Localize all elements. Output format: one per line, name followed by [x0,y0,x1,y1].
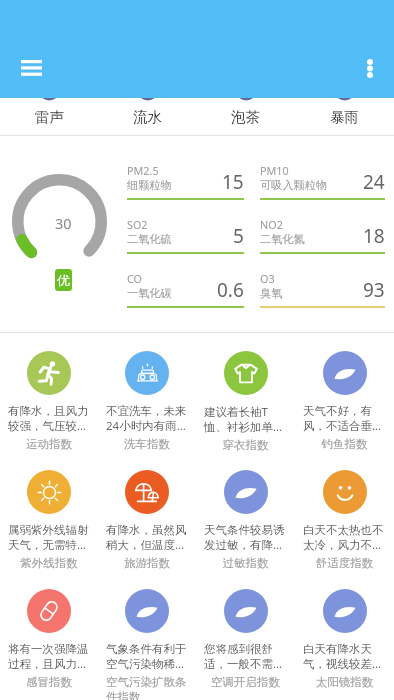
staticText: 24 [363,169,385,195]
staticText: 一氧化碳 [127,286,172,300]
staticText: 93 [363,277,385,303]
staticText: 二氧化氮 [260,232,305,246]
staticText: 空调开启指数 [204,675,287,689]
staticText: 泡茶 [231,108,260,126]
button[interactable]: 属弱紫外线辐射天气，无需特… [0,452,98,571]
staticText: 不宜洗车，未来24小时内有雨… [106,404,188,434]
button[interactable]: 您将感到很舒适，一般不需… [196,571,295,700]
staticText: 暴雨 [330,108,359,126]
staticText: 感冒指数 [8,675,90,689]
staticText: 您将感到很舒适，一般不需… [204,642,287,672]
staticText: 空气污染扩散条件指数 [106,675,188,700]
staticText: 0.6 [217,277,244,303]
button[interactable]: 有降水，虽然风稍大，但温度… [98,452,196,571]
staticText: 太阳镜指数 [303,675,386,689]
staticText: 可吸入颗粒物 [260,178,328,192]
staticText: 白天有降水天气，视线较差… [303,642,386,672]
staticText: 白天不太热也不太冷，风力不… [303,523,386,553]
staticText: 流水 [133,108,162,126]
staticText: 臭氧 [260,286,283,300]
staticText: PM2.5 [127,163,159,178]
staticText: PM10 [260,163,289,178]
staticText: CO [127,271,143,286]
staticText: 二氧化硫 [127,232,172,246]
staticText: NO2 [260,217,283,232]
staticText: 旅游指数 [106,556,188,570]
button[interactable]: Menu [8,48,54,88]
button[interactable]: 流水 [98,98,196,135]
button[interactable]: 白天不太热也不太冷，风力不… [295,452,394,571]
button[interactable]: SO2 [127,212,244,254]
button[interactable]: 天气不好，有风，不适合垂… [295,333,394,452]
button[interactable]: 建议着长袖T恤、衬衫加单… [196,333,295,452]
staticText: 穿衣指数 [204,438,287,452]
staticText: 紫外线指数 [8,556,90,570]
staticText: 天气条件较易诱发过敏，有降… [204,523,287,553]
button[interactable]: 白天有降水天气，视线较差… [295,571,394,700]
staticText: 15 [222,169,244,195]
staticText: 运动指数 [8,437,90,451]
staticText: 5 [233,223,244,249]
staticText: 细颗粒物 [127,178,172,192]
button[interactable]: 有降水，且风力较强，气压较… [0,333,98,452]
button[interactable]: PM10 [260,158,385,200]
button[interactable]: PM2.5 [127,158,244,200]
button[interactable]: 将有一次强降温过程，且风力… [0,571,98,700]
button[interactable]: 不宜洗车，未来24小时内有雨… [98,333,196,452]
staticText: 18 [363,223,385,249]
staticText: 洗车指数 [106,437,188,451]
staticText: 过敏指数 [204,556,287,570]
staticText: 属弱紫外线辐射天气，无需特… [8,523,90,553]
button[interactable]: More options [350,48,390,88]
staticText: 有降水，且风力较强，气压较… [8,404,90,434]
button[interactable]: NO2 [260,212,385,254]
button[interactable]: CO [127,266,244,308]
staticText: 天气不好，有风，不适合垂… [303,404,386,434]
staticText: 30 [55,213,72,233]
staticText: 气象条件有利于空气污染物稀… [106,642,188,672]
staticText: 有降水，虽然风稍大，但温度… [106,523,188,553]
staticText: 钓鱼指数 [303,437,386,451]
staticText: 优 [57,272,70,288]
button[interactable]: 气象条件有利于空气污染物稀… [98,571,196,700]
staticText: O3 [260,271,275,286]
button[interactable]: 雷声 [0,98,98,135]
staticText: 建议着长袖T恤、衬衫加单… [204,404,287,435]
staticText: 将有一次强降温过程，且风力… [8,642,90,672]
staticText: SO2 [127,217,148,232]
button[interactable]: 天气条件较易诱发过敏，有降… [196,452,295,571]
button[interactable]: 泡茶 [196,98,295,135]
staticText: 舒适度指数 [303,556,386,570]
button[interactable]: 暴雨 [295,98,394,135]
staticText: 雷声 [35,108,64,126]
button[interactable]: O3 [260,266,385,308]
